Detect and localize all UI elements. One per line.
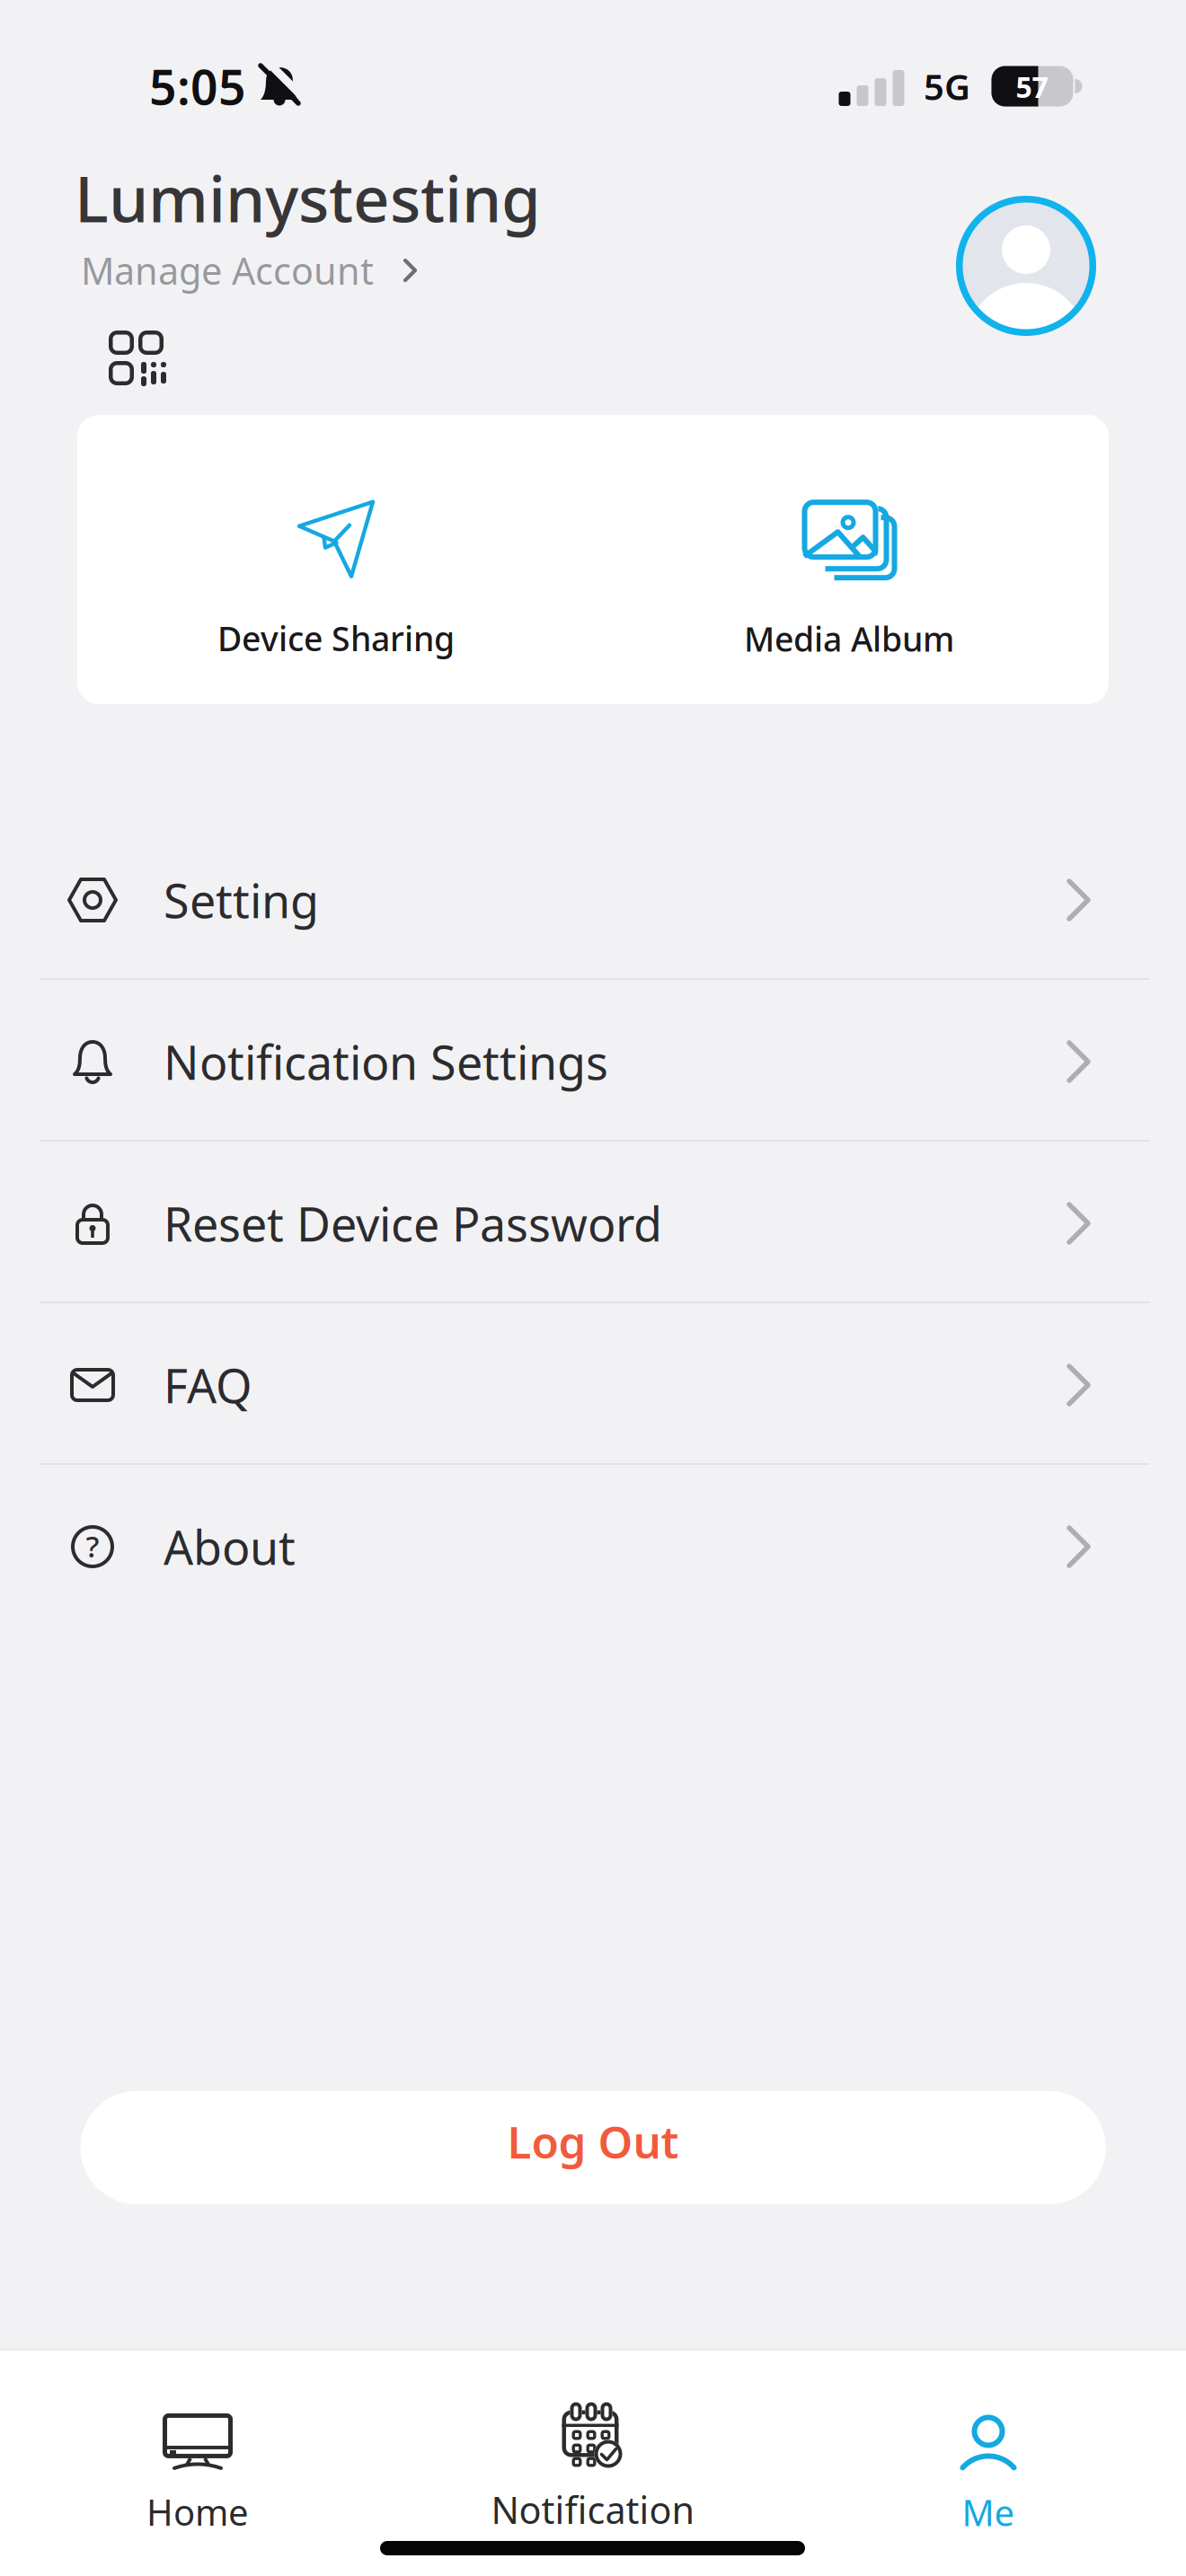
staticText: Log Out <box>507 2112 679 2171</box>
button[interactable]: Notification <box>491 2402 695 2534</box>
staticText: Notification Settings <box>164 1031 608 1093</box>
staticText: Setting <box>164 869 319 931</box>
staticText: Media Album <box>744 616 954 661</box>
staticText: Home <box>146 2488 249 2536</box>
staticText: FAQ <box>164 1354 252 1416</box>
button[interactable]: Notification Settings <box>0 981 1186 1142</box>
button[interactable]: Me <box>962 2415 1015 2536</box>
staticText: ? <box>86 1526 99 1566</box>
button[interactable]: Device Sharing <box>217 500 455 660</box>
button[interactable]: Home <box>146 2413 249 2536</box>
button[interactable]: Setting <box>0 819 1186 981</box>
button[interactable]: Profile photo <box>956 196 1096 336</box>
staticText: Device Sharing <box>217 616 455 660</box>
staticText: 5:05 <box>149 54 246 118</box>
button[interactable]: Log Out <box>80 2091 1106 2204</box>
staticText: Reset Device Password <box>164 1192 662 1254</box>
button[interactable]: ? <box>0 1466 1186 1628</box>
staticText: Me <box>962 2488 1015 2536</box>
button[interactable]: Reset Device Password <box>0 1142 1186 1304</box>
button[interactable]: Media Album <box>744 500 954 661</box>
button[interactable]: Scan QR code <box>109 331 166 386</box>
button[interactable]: FAQ <box>0 1304 1186 1466</box>
button[interactable]: Manage Account <box>81 243 620 297</box>
staticText: Luminystesting <box>75 155 541 240</box>
staticText: About <box>164 1516 296 1578</box>
staticText: Notification <box>491 2485 695 2534</box>
staticText: 5G <box>924 62 970 110</box>
staticText: 57 <box>1016 68 1048 106</box>
staticText: Manage Account <box>81 246 374 295</box>
